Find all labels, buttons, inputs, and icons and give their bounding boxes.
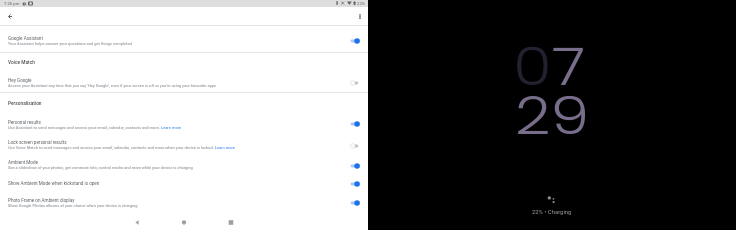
- staticText: 22%: [357, 1, 365, 6]
- button[interactable]: [0, 74, 368, 93]
- staticText: Show Ambient Mode when kickstand is open: [8, 181, 100, 186]
- button[interactable]: Navigate up: [3, 10, 16, 23]
- staticText: Photo Frame on Ambient display: [8, 198, 75, 203]
- button[interactable]: [0, 156, 368, 175]
- staticText: Your Assistant helps answer your questio…: [8, 41, 132, 46]
- staticText: Show Google Photos albums of your choice…: [8, 203, 138, 208]
- staticText: Voice Match: [8, 60, 35, 66]
- button[interactable]: [0, 32, 368, 51]
- staticText: Access your Assistant any time that you …: [8, 83, 217, 88]
- button[interactable]: [0, 136, 368, 155]
- staticText: 22% • Charging: [532, 209, 572, 216]
- button[interactable]: Recent apps: [225, 216, 237, 228]
- staticText: Lock screen personal results: [8, 140, 67, 145]
- staticText: Personalisation: [8, 101, 42, 107]
- staticText: Use Assistant to send messages and acces…: [8, 125, 182, 130]
- staticText: 29: [515, 79, 590, 152]
- staticText: 7:26 pm: [4, 1, 20, 6]
- button[interactable]: [0, 116, 368, 135]
- staticText: Use Voice Match to send messages and acc…: [8, 145, 235, 150]
- staticText: Hey Google: [8, 78, 32, 83]
- staticText: Google Assistant: [8, 36, 43, 41]
- staticText: Ambient Mode: [8, 160, 38, 165]
- staticText: 07: [513, 30, 586, 103]
- button[interactable]: Home: [178, 216, 190, 228]
- button[interactable]: [0, 177, 368, 190]
- button[interactable]: [0, 194, 368, 213]
- staticText: Personal results: [8, 120, 41, 125]
- button[interactable]: Back: [131, 216, 143, 228]
- staticText: See a slideshow of your photos, get comm…: [8, 165, 193, 170]
- button[interactable]: More options: [353, 10, 366, 23]
